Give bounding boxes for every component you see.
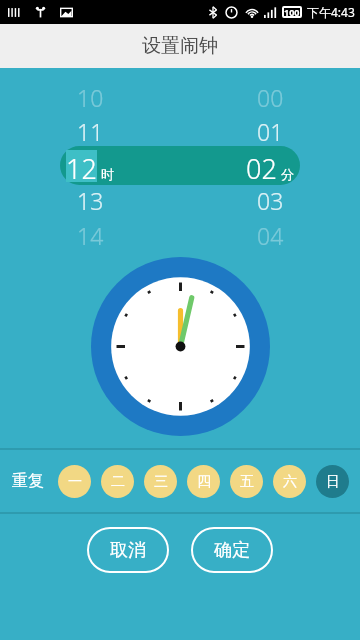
staticText: 04	[257, 220, 284, 251]
other: Analog clock	[91, 257, 270, 436]
button[interactable]: 三	[144, 465, 177, 498]
button[interactable]: 10	[0, 78, 180, 253]
staticText: 六	[283, 473, 297, 491]
staticText: 重复	[12, 471, 44, 491]
staticText: 下午4:43	[307, 4, 355, 20]
staticText: 时	[101, 166, 114, 182]
staticText: 四	[197, 473, 211, 491]
staticText: 三	[154, 473, 168, 491]
button[interactable]: 取消	[87, 527, 169, 573]
staticText: 14	[77, 220, 104, 251]
staticText: 03	[257, 185, 284, 216]
staticText: 二	[111, 473, 125, 491]
button[interactable]: 五	[230, 465, 263, 498]
staticText: 100	[284, 6, 300, 18]
button[interactable]: 六	[273, 465, 306, 498]
staticText: 10	[77, 82, 104, 113]
button[interactable]: 确定	[191, 527, 273, 573]
button[interactable]: 二	[101, 465, 134, 498]
staticText: 日	[326, 473, 340, 491]
staticText: 五	[240, 473, 254, 491]
staticText: 设置闹钟	[142, 34, 218, 58]
button[interactable]: 日	[316, 465, 349, 498]
button[interactable]: 四	[187, 465, 220, 498]
staticText: 00	[257, 82, 284, 113]
staticText: 11	[77, 116, 104, 147]
staticText: 01	[257, 116, 284, 147]
staticText: 分	[281, 166, 294, 182]
staticText: 12	[66, 150, 97, 182]
button[interactable]: 00	[180, 78, 360, 253]
staticText: 一	[68, 473, 82, 491]
staticText: 13	[77, 185, 104, 216]
staticText: 02	[246, 150, 277, 182]
staticText: 取消	[110, 539, 146, 562]
staticText: 确定	[214, 539, 250, 562]
button[interactable]: 一	[58, 465, 91, 498]
